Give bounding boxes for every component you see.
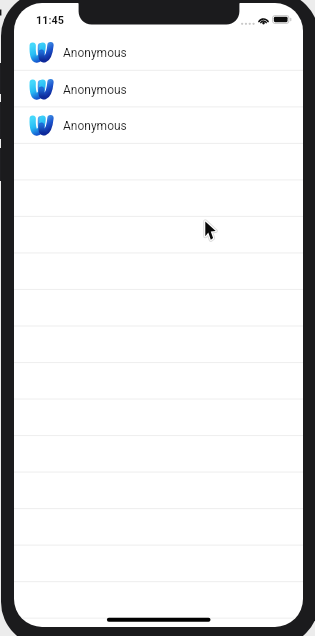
- button[interactable]: [14, 581, 303, 618]
- staticText: Anonymous: [63, 46, 127, 60]
- button[interactable]: Anonymous: [14, 33, 303, 70]
- staticText: Anonymous: [63, 119, 127, 133]
- staticText: 11:45: [36, 14, 64, 27]
- button[interactable]: [14, 216, 303, 253]
- button[interactable]: Anonymous: [14, 106, 303, 143]
- staticText: Anonymous: [63, 83, 127, 97]
- button[interactable]: [14, 472, 303, 509]
- button[interactable]: [14, 143, 303, 180]
- button[interactable]: Anonymous: [14, 70, 303, 107]
- button[interactable]: [14, 618, 303, 627]
